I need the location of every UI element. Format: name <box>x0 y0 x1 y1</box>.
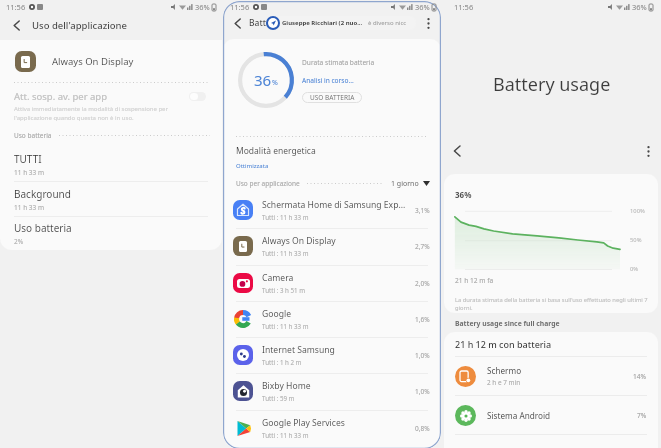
button[interactable]: Background <box>0 182 222 216</box>
staticText: Background <box>14 187 71 201</box>
button[interactable]: Sistema Android <box>444 396 658 434</box>
staticText: Schermo <box>487 365 522 376</box>
staticText: Attiva immediatamente la modalità di sos… <box>14 105 168 121</box>
button[interactable]: Always On Display <box>0 40 222 82</box>
button[interactable]: Back <box>6 15 27 36</box>
staticText: Schermata Home di Samsung Exper... <box>262 199 409 211</box>
staticText: 1,6% <box>415 315 430 324</box>
staticText: Google Play Services <box>262 417 345 429</box>
staticText: Battery usage since full charge <box>455 319 560 328</box>
staticText: 1 giorno <box>391 179 419 189</box>
staticText: Always On Display <box>52 55 134 68</box>
staticText: Sistema Android <box>487 410 551 421</box>
button[interactable]: Google <box>223 301 441 337</box>
staticText: Tutti : 3 h 51 m <box>262 286 305 294</box>
staticText: 11:56 <box>454 2 474 12</box>
staticText: 36% <box>455 189 472 200</box>
staticText: 1,0% <box>415 351 430 360</box>
staticText: 14% <box>633 372 647 381</box>
staticText: 0% <box>630 265 639 273</box>
staticText: Uso batteria <box>14 221 72 235</box>
staticText: Tutti : 59 m <box>262 394 295 402</box>
staticText: USO BATTERIA <box>310 93 355 102</box>
staticText: 3,1% <box>415 206 430 215</box>
button[interactable]: Internet Samsung <box>223 337 441 373</box>
button[interactable]: Schermata Home di Samsung Exper... <box>223 192 441 228</box>
staticText: 36% <box>195 2 210 12</box>
staticText: Ottimizzata <box>236 162 269 170</box>
staticText: Internet Samsung <box>262 344 335 356</box>
button[interactable]: Uso batteria <box>0 217 222 250</box>
staticText: 100% <box>630 207 645 215</box>
staticText: 50% <box>630 236 642 244</box>
staticText: 2% <box>14 237 24 246</box>
staticText: Camera <box>262 272 294 284</box>
button[interactable]: Back <box>227 13 247 33</box>
staticText: % <box>272 78 278 88</box>
staticText: Uso batteria <box>14 131 52 140</box>
button[interactable]: Bixby Home <box>223 373 441 409</box>
staticText: Tutti : 11 h 33 m <box>262 249 309 257</box>
button[interactable]: TUTTI <box>0 147 222 181</box>
staticText: è diverso nicc <box>368 19 407 27</box>
staticText: 2,0% <box>415 279 430 288</box>
staticText: TUTTI <box>14 152 42 166</box>
button[interactable]: Camera <box>223 265 441 301</box>
staticText: Google <box>262 308 292 320</box>
staticText: 0,8% <box>415 424 430 433</box>
staticText: 11 h 33 m <box>14 203 45 212</box>
staticText: 11:56 <box>230 2 250 12</box>
staticText: Uso dell'applicazione <box>32 19 128 32</box>
staticText: 36 <box>254 70 272 90</box>
staticText: 2 h e 7 min <box>487 378 521 387</box>
staticText: Tutti : 11 h 33 m <box>262 322 309 330</box>
button[interactable]: Modalità energetica <box>223 137 441 173</box>
button[interactable]: More options <box>418 13 438 33</box>
staticText: Analisi in corso... <box>302 76 354 85</box>
button[interactable]: Google Play Services <box>223 410 441 446</box>
staticText: Att. sosp. av. per app <box>14 90 108 103</box>
staticText: Tutti : 11 h 33 m <box>262 431 309 439</box>
staticText: 11 h 33 m <box>14 168 45 177</box>
staticText: Tutti : 11 h 33 m <box>262 213 309 221</box>
button[interactable]: Always On Display <box>223 228 441 264</box>
staticText: Durata stimata batteria <box>302 58 375 67</box>
staticText: Uso per applicazione <box>236 179 300 188</box>
staticText: Modalità energetica <box>236 145 316 157</box>
staticText: 36% <box>415 2 430 12</box>
staticText: 11:56 <box>6 2 26 12</box>
staticText: Always On Display <box>262 235 336 247</box>
button[interactable]: Giuseppe Ricchiari (2 nuo... <box>273 16 416 30</box>
button[interactable]: Schermo <box>444 357 658 395</box>
staticText: Tutti : 1 h 2 m <box>262 358 302 366</box>
button[interactable]: Back <box>447 141 467 161</box>
button[interactable]: USO BATTERIA <box>302 92 362 103</box>
staticText: Batteria <box>249 17 282 29</box>
button[interactable]: Att. sosp. av. per app <box>0 83 222 123</box>
staticText: Giuseppe Ricchiari (2 nuo... <box>282 19 363 27</box>
staticText: 21 h 12 m fa <box>455 276 494 285</box>
staticText: 36% <box>632 2 647 12</box>
staticText: La durata stimata della batteria si basa… <box>455 296 648 312</box>
button[interactable]: More options <box>638 141 658 161</box>
staticText: 21 h 12 m con batteria <box>455 338 552 350</box>
staticText: Battery usage <box>493 72 611 97</box>
staticText: Bixby Home <box>262 380 311 392</box>
staticText: 1,0% <box>415 387 430 396</box>
staticText: 7% <box>637 411 647 420</box>
staticText: 2,7% <box>415 242 430 251</box>
